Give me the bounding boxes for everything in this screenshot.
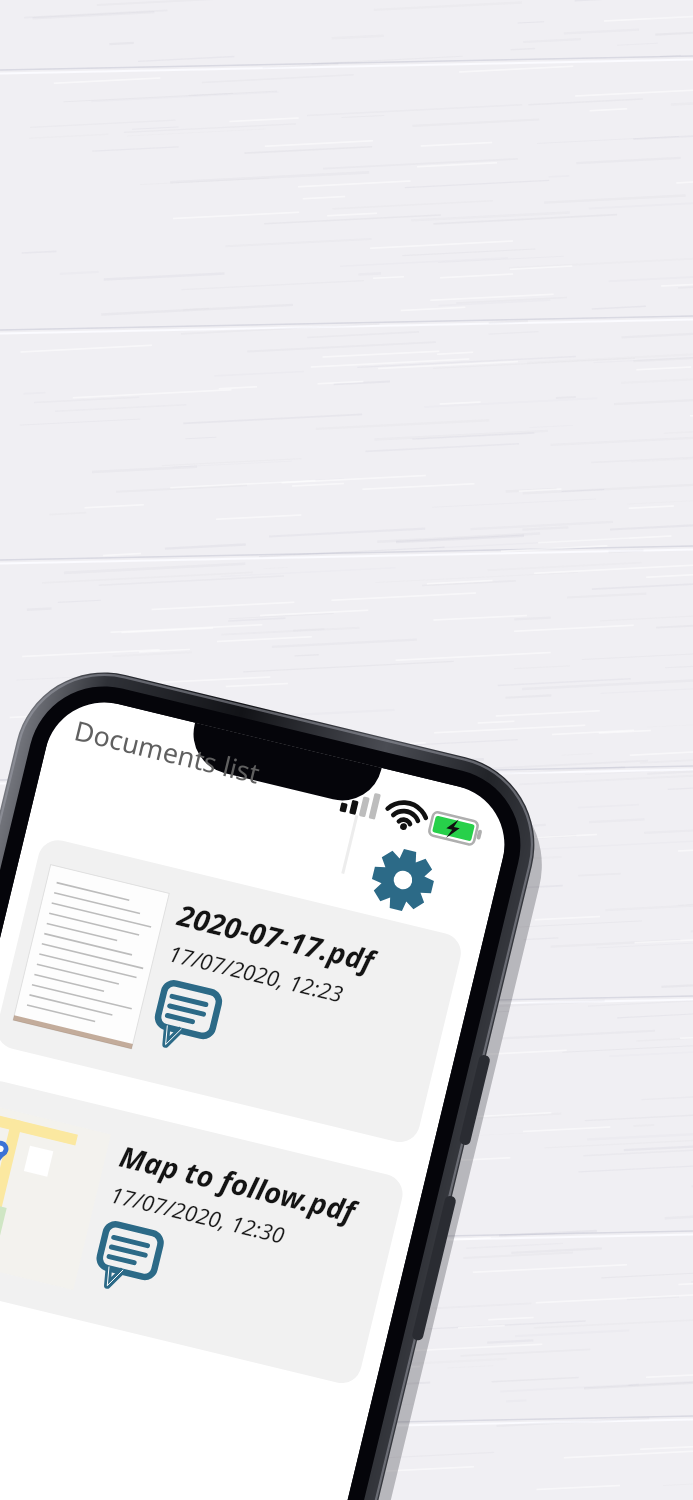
button[interactable]: Add document bbox=[62, 1252, 224, 1364]
